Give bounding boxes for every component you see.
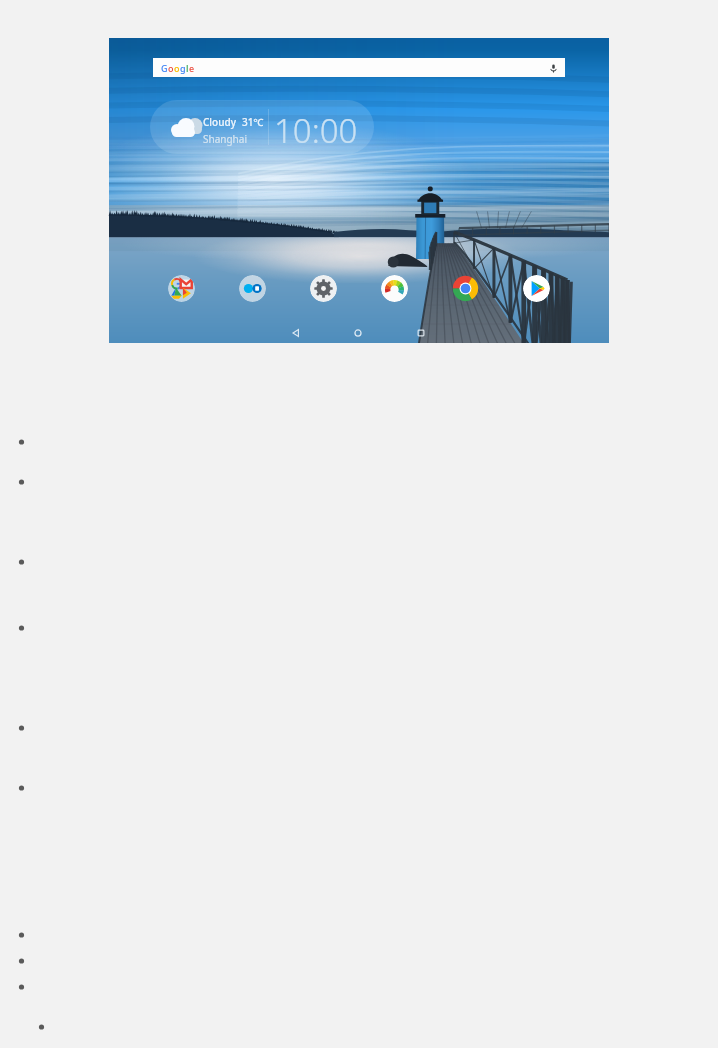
staticText: Shanghai <box>203 132 247 146</box>
button[interactable]: Settings <box>310 275 337 302</box>
staticText: o <box>174 62 180 74</box>
button[interactable]: Google folder <box>168 275 195 302</box>
button[interactable]: Cloudy <box>150 100 374 154</box>
button[interactable]: G <box>109 38 609 343</box>
staticText: o <box>168 62 174 74</box>
button[interactable]: Gallery <box>381 275 408 302</box>
staticText: g <box>180 62 186 74</box>
button[interactable]: Recent apps <box>406 321 436 345</box>
button[interactable]: Microsoft folder <box>239 275 266 302</box>
staticText: e <box>189 62 195 74</box>
button[interactable]: Play Store <box>523 275 550 302</box>
other: Voice search <box>546 61 560 75</box>
button[interactable]: Back <box>281 321 311 345</box>
button[interactable]: Home <box>343 321 373 345</box>
staticText: l <box>186 62 189 74</box>
button[interactable]: Chrome <box>452 275 479 302</box>
staticText: G <box>161 62 168 74</box>
staticText: Cloudy <box>203 115 236 129</box>
staticText: 10:00 <box>274 108 358 153</box>
staticText: 31℃ <box>242 115 264 129</box>
button[interactable]: G <box>153 58 565 77</box>
